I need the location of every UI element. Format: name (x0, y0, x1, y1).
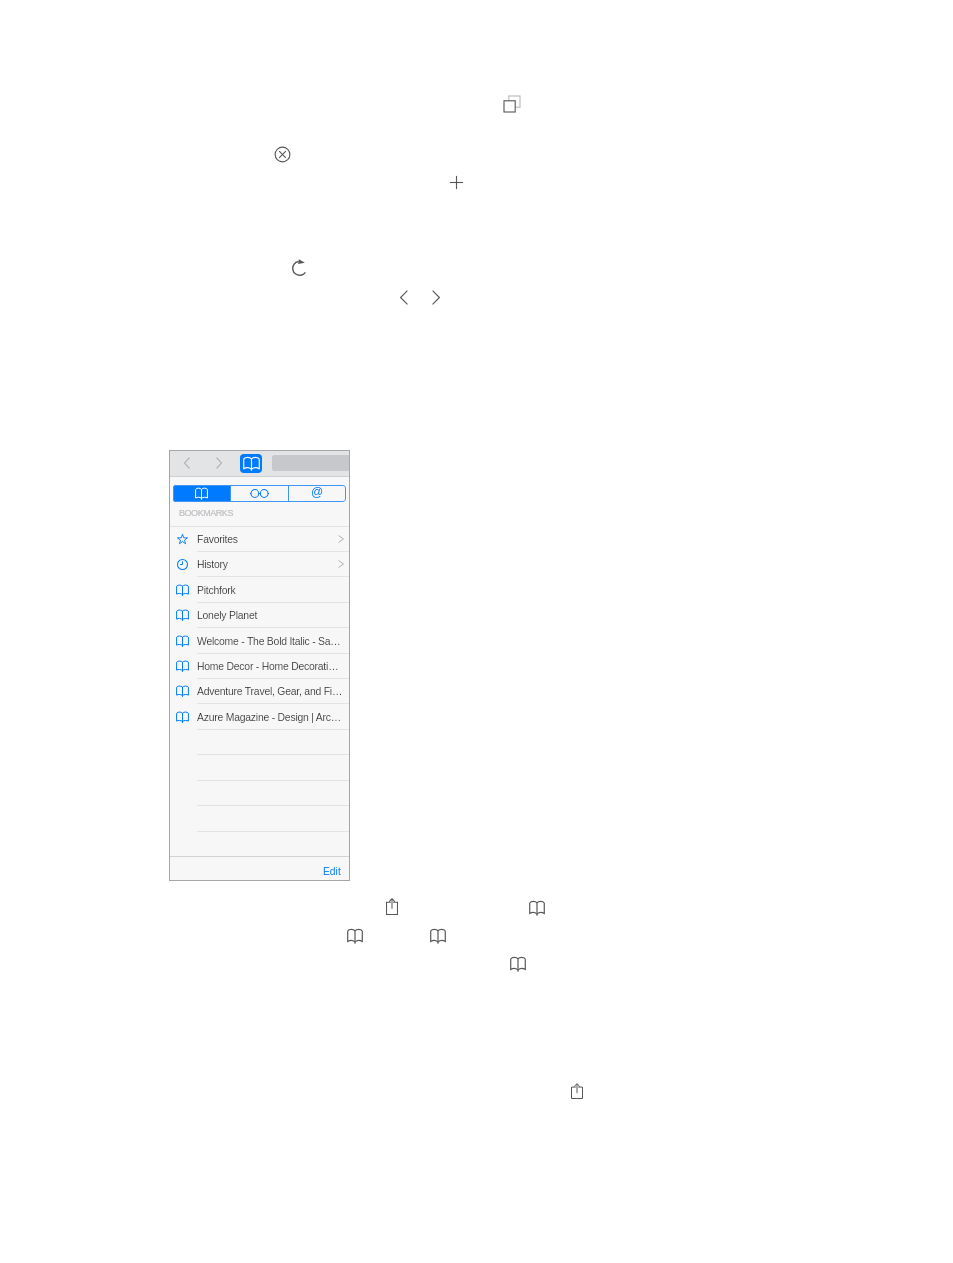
staticText: @ (311, 485, 324, 498)
button[interactable]: Back (400, 290, 408, 305)
button[interactable]: Forward (432, 290, 440, 305)
button[interactable]: Bookmarks (240, 454, 262, 473)
button[interactable]: Bookmarks (347, 928, 363, 944)
staticText: Pitchfork (197, 585, 236, 597)
button[interactable]: Back (184, 457, 190, 469)
button[interactable]: Welcome - The Bold Italic - Sa… (169, 629, 350, 654)
button[interactable]: Favorites (169, 527, 350, 552)
button[interactable]: Bookmarks tab (173, 485, 230, 502)
staticText: Azure Magazine - Design | Arc… (197, 712, 341, 724)
button[interactable]: Share (571, 1083, 583, 1099)
staticText: Lonely Planet (197, 610, 258, 622)
staticText: BOOKMARKS (179, 508, 233, 518)
staticText: Adventure Travel, Gear, and Fi… (197, 686, 343, 698)
staticText: Favorites (197, 534, 238, 546)
button[interactable]: Tabs (504, 96, 520, 112)
button[interactable]: Bookmarks (510, 956, 526, 972)
button[interactable]: Bookmarks (529, 900, 545, 916)
button[interactable]: Lonely Planet (169, 603, 350, 628)
button[interactable]: Reload (292, 259, 307, 276)
button[interactable]: Share (386, 898, 398, 915)
button[interactable]: Close (274, 146, 291, 163)
button[interactable]: Azure Magazine - Design | Arc… (169, 705, 350, 730)
staticText: Edit (323, 866, 341, 878)
staticText: History (197, 559, 228, 571)
button[interactable]: Adventure Travel, Gear, and Fi… (169, 679, 350, 704)
button[interactable]: Shared links tab (289, 485, 346, 502)
button[interactable]: Reading list tab (231, 485, 288, 502)
button[interactable]: Home Decor - Home Decorati… (169, 654, 350, 679)
button[interactable]: Forward (216, 457, 222, 469)
button[interactable]: Add (449, 175, 464, 190)
button[interactable]: Address bar (272, 455, 350, 471)
button[interactable]: Edit (313, 858, 350, 880)
button[interactable]: History (169, 552, 350, 577)
button[interactable]: Bookmarks (430, 928, 446, 944)
staticText: Home Decor - Home Decorati… (197, 661, 339, 673)
staticText: Welcome - The Bold Italic - Sa… (197, 636, 341, 648)
button[interactable]: Pitchfork (169, 578, 350, 603)
